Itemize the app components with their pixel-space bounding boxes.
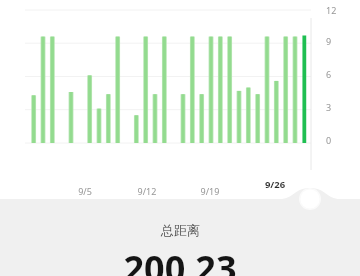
staticText: 200.23 [123,244,237,276]
staticText: 9 [326,35,332,47]
staticText: 9/5 [68,185,102,197]
staticText: 6 [326,68,332,80]
staticText: 9/26 [258,178,292,191]
staticText: 9/12 [130,185,164,197]
button[interactable]: Daily distance bar chart [0,0,360,196]
staticText: 12 [326,4,337,16]
staticText: 总距离 [161,222,200,238]
staticText: 3 [326,101,332,113]
staticText: 9/19 [193,185,227,197]
button[interactable]: Scroll handle [299,188,321,210]
staticText: 0 [326,134,332,146]
